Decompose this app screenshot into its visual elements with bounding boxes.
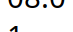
staticText: 08:01 bbox=[7, 0, 66, 32]
